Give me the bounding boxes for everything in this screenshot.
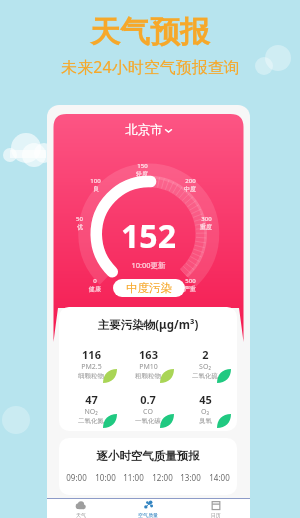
staticText: PM10	[139, 362, 158, 372]
staticText: 中度	[184, 185, 196, 193]
staticText: 13:00	[180, 472, 201, 483]
button[interactable]: 空气质量	[114, 499, 182, 518]
staticText: SO₂	[199, 362, 211, 372]
staticText: 一氧化碳	[135, 417, 161, 425]
staticText: 二氧化硫	[192, 372, 218, 380]
staticText: 0	[93, 277, 97, 285]
staticText: 116	[82, 347, 101, 362]
staticText: PM2.5	[81, 362, 102, 372]
staticText: 主要污染物(μg/m³)	[65, 317, 231, 333]
staticText: 逐小时空气质量预报	[59, 449, 237, 463]
staticText: 粗颗粒物	[135, 372, 161, 380]
button[interactable]: 45	[179, 388, 231, 428]
staticText: 12:00	[152, 472, 173, 483]
staticText: 47	[85, 392, 98, 407]
staticText: 11:00	[123, 472, 144, 483]
staticText: 300	[201, 215, 212, 223]
staticText: 152	[121, 214, 176, 258]
staticText: 天气	[76, 512, 86, 518]
button[interactable]: 0.7	[122, 388, 174, 428]
staticText: 2	[202, 347, 209, 362]
staticText: 14:00	[209, 472, 230, 483]
staticText: 45	[199, 392, 212, 407]
button[interactable]: 天气	[47, 499, 114, 518]
staticText: 空气质量	[138, 512, 158, 518]
staticText: 中度污染	[126, 281, 172, 295]
staticText: 健康	[89, 285, 101, 293]
button[interactable]: 2	[179, 343, 231, 383]
button[interactable]: 116	[65, 343, 117, 383]
staticText: 优	[77, 223, 83, 231]
staticText: 163	[139, 347, 158, 362]
staticText: 09:00	[66, 472, 87, 483]
staticText: 10:00	[95, 472, 116, 483]
staticText: 臭氧	[199, 417, 212, 425]
staticText: 严重	[184, 285, 196, 293]
button[interactable]: 日历	[182, 499, 250, 518]
button[interactable]: 中度污染	[113, 279, 185, 297]
staticText: 0.7	[140, 392, 156, 407]
staticText: 150	[137, 162, 148, 170]
staticText: O₃	[201, 407, 209, 417]
staticText: 北京市	[125, 122, 163, 138]
staticText: 细颗粒物	[78, 372, 104, 380]
staticText: 未来24小时空气预报查询	[61, 56, 240, 78]
staticText: 200	[185, 177, 196, 185]
staticText: 轻度	[136, 170, 148, 178]
staticText: 良	[93, 185, 99, 193]
staticText: 10:00更新	[131, 260, 166, 270]
staticText: 100	[90, 177, 101, 185]
staticText: 50	[76, 215, 83, 223]
staticText: CO	[143, 407, 153, 417]
staticText: 天气预报	[90, 13, 210, 51]
staticText: 二氧化氮	[78, 417, 104, 425]
button[interactable]: 北京市	[115, 120, 182, 140]
staticText: 500	[185, 277, 196, 285]
staticText: 重度	[200, 223, 212, 231]
staticText: 日历	[211, 512, 221, 518]
staticText: NO₂	[84, 407, 98, 417]
button[interactable]: 163	[122, 343, 174, 383]
button[interactable]: 47	[65, 388, 117, 428]
